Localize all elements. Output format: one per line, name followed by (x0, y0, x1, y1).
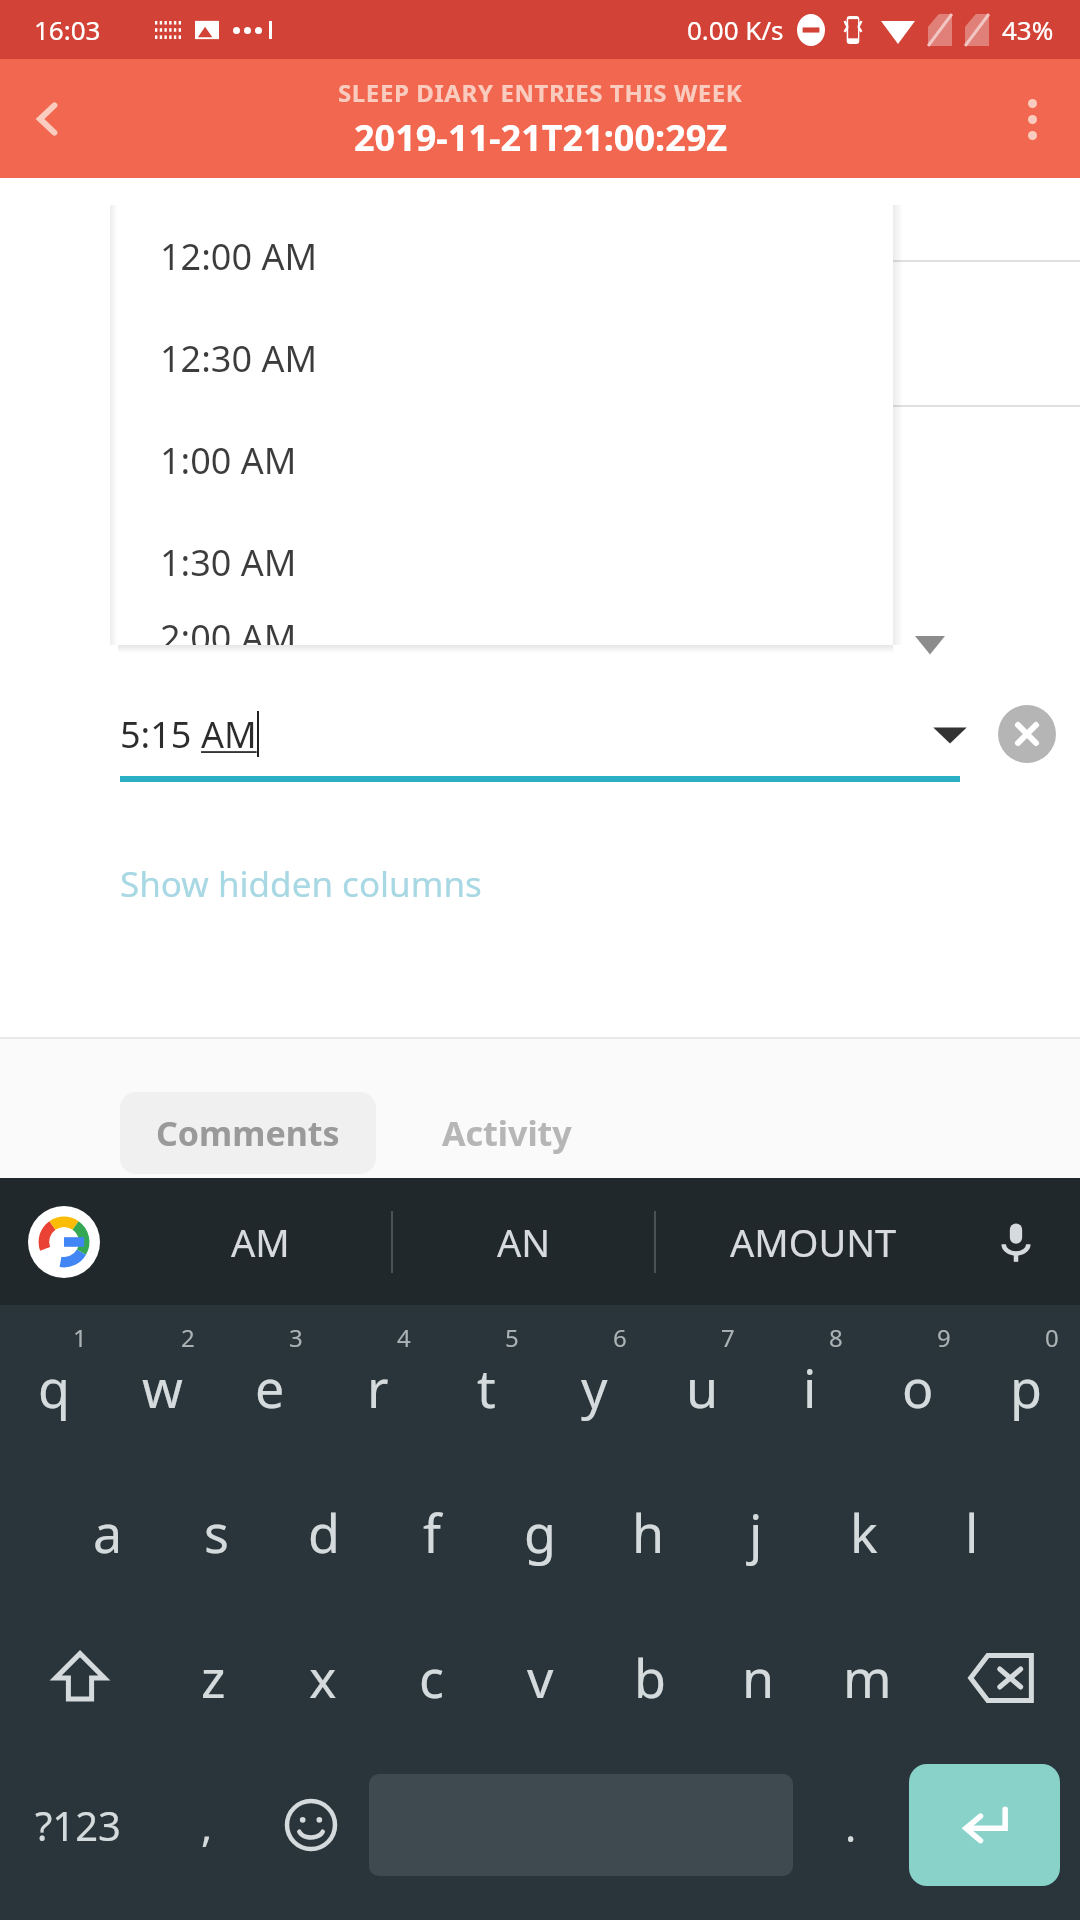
button[interactable]: x (268, 1605, 377, 1750)
button[interactable]: . (799, 1750, 903, 1900)
button[interactable]: Enter (909, 1764, 1060, 1886)
button[interactable]: m (813, 1605, 922, 1750)
button[interactable]: 5:15 (0, 688, 1080, 780)
button[interactable]: More options (984, 71, 1080, 167)
staticText: w (142, 1352, 183, 1423)
staticText: 2:00 AM (160, 613, 297, 645)
staticText: d (308, 1497, 340, 1568)
staticText: j (749, 1497, 763, 1568)
staticText: 7 (721, 1321, 735, 1354)
button[interactable]: z (159, 1605, 268, 1750)
button[interactable]: v (486, 1605, 595, 1750)
button[interactable]: Show hidden columns (120, 860, 482, 908)
button[interactable]: Emoji (259, 1750, 363, 1900)
button[interactable]: e (216, 1315, 324, 1460)
staticText: 3 (289, 1321, 303, 1354)
staticText: t (477, 1352, 496, 1423)
staticText: c (419, 1642, 444, 1713)
button[interactable]: a (54, 1460, 162, 1605)
button[interactable]: Clear (998, 705, 1056, 763)
staticText: 8 (829, 1321, 843, 1354)
staticText: Show hidden columns (120, 860, 482, 908)
button[interactable]: d (270, 1460, 378, 1605)
staticText: 0.00 K/s (687, 12, 784, 47)
staticText: 5 (505, 1321, 519, 1354)
staticText: 6 (613, 1321, 627, 1354)
staticText: a (93, 1497, 123, 1568)
button[interactable]: 1:30 AM (118, 511, 893, 613)
button[interactable]: n (704, 1605, 813, 1750)
staticText: 9 (937, 1321, 951, 1354)
button[interactable]: 12:30 AM (118, 307, 893, 409)
button[interactable]: g (486, 1460, 594, 1605)
staticText: r (367, 1352, 389, 1423)
button[interactable]: r (324, 1315, 432, 1460)
button[interactable]: k (810, 1460, 918, 1605)
button[interactable]: u (648, 1315, 756, 1460)
staticText: , (201, 1797, 213, 1854)
staticText: h (632, 1497, 665, 1568)
button[interactable]: Voice input (980, 1206, 1052, 1278)
staticText: 0 (1045, 1321, 1059, 1354)
button[interactable]: y (540, 1315, 648, 1460)
button[interactable]: s (162, 1460, 270, 1605)
staticText: SLEEP DIARY ENTRIES THIS WEEK (338, 76, 743, 109)
button[interactable]: 12:00 AM (118, 205, 893, 307)
staticText: Activity (442, 1110, 572, 1156)
button[interactable]: AN (393, 1187, 654, 1297)
button[interactable]: c (377, 1605, 486, 1750)
staticText: 12:00 AM (160, 232, 318, 281)
staticText: u (686, 1352, 719, 1423)
staticText: e (255, 1352, 285, 1423)
staticText: s (204, 1497, 229, 1568)
staticText: 43% (1002, 12, 1054, 47)
staticText: f (423, 1497, 441, 1568)
staticText: 4 (397, 1321, 411, 1354)
button[interactable]: l (918, 1460, 1026, 1605)
staticText: Comments (156, 1110, 340, 1156)
button[interactable]: f (378, 1460, 486, 1605)
staticText: 12:30 AM (160, 334, 318, 383)
button[interactable]: j (702, 1460, 810, 1605)
button[interactable]: b (595, 1605, 704, 1750)
button[interactable]: Activity (406, 1092, 608, 1174)
button[interactable]: 1:00 AM (118, 409, 893, 511)
button[interactable]: Comments (120, 1092, 376, 1174)
staticText: b (634, 1642, 666, 1713)
button[interactable]: Back (0, 71, 96, 167)
staticText: 5:15 (120, 710, 201, 759)
button[interactable]: i (756, 1315, 864, 1460)
button[interactable]: AM (130, 1187, 391, 1297)
button[interactable]: t (432, 1315, 540, 1460)
staticText: g (524, 1497, 556, 1568)
staticText: l (965, 1497, 979, 1568)
staticText: 2 (181, 1321, 195, 1354)
staticText: k (850, 1497, 878, 1568)
staticText: ?123 (35, 1798, 121, 1852)
staticText: 1:00 AM (160, 436, 297, 485)
button[interactable]: o (864, 1315, 972, 1460)
button[interactable]: ?123 (0, 1750, 155, 1900)
staticText: o (902, 1352, 934, 1423)
button[interactable]: 2:00 AM (118, 613, 893, 645)
button[interactable]: , (155, 1750, 259, 1900)
button[interactable]: q (0, 1315, 108, 1460)
staticText: z (201, 1642, 226, 1713)
button[interactable]: Google (28, 1206, 100, 1278)
button[interactable]: h (594, 1460, 702, 1605)
button[interactable]: w (108, 1315, 216, 1460)
staticText: 1:30 AM (160, 538, 297, 587)
staticText: i (803, 1352, 817, 1423)
staticText: y (581, 1352, 608, 1423)
staticText: x (309, 1642, 337, 1713)
staticText: AM (231, 1216, 290, 1268)
button[interactable]: p (972, 1315, 1080, 1460)
staticText: q (38, 1352, 70, 1423)
other: Open list (928, 719, 972, 749)
button[interactable]: Shift (0, 1605, 159, 1750)
staticText: 1 (73, 1321, 87, 1354)
button[interactable]: Backspace (922, 1605, 1080, 1750)
staticText: p (1010, 1352, 1042, 1423)
button[interactable]: AMOUNT (656, 1187, 970, 1297)
